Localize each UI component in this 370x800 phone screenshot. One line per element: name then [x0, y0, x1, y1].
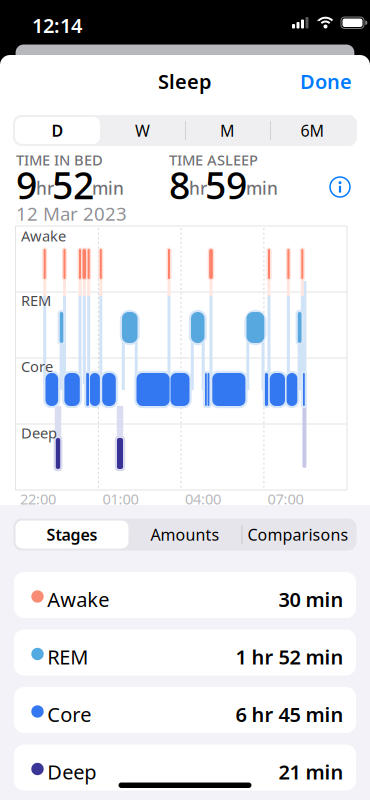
- button[interactable]: Amounts: [128, 520, 241, 548]
- staticText: hr: [36, 176, 54, 199]
- button[interactable]: REM: [14, 629, 356, 675]
- staticText: 04:00: [185, 489, 221, 508]
- staticText: W: [135, 120, 150, 141]
- staticText: REM: [21, 290, 51, 310]
- staticText: 22:00: [20, 489, 56, 508]
- staticText: 21 min: [278, 758, 343, 785]
- staticText: min: [246, 176, 278, 199]
- staticText: Core: [21, 356, 53, 376]
- button[interactable]: Done: [282, 68, 352, 95]
- staticText: Core: [47, 701, 91, 728]
- staticText: 12:14: [32, 12, 82, 39]
- staticText: 6M: [300, 120, 324, 141]
- staticText: D: [51, 120, 63, 141]
- staticText: M: [220, 120, 235, 141]
- staticText: Done: [300, 68, 352, 95]
- button[interactable]: M: [185, 117, 270, 144]
- staticText: 52: [52, 160, 94, 210]
- staticText: 01:00: [102, 489, 138, 508]
- staticText: Deep: [47, 758, 96, 785]
- button[interactable]: Awake: [14, 572, 356, 618]
- staticText: 1 hr 52 min: [235, 643, 343, 670]
- staticText: TIME IN BED: [16, 150, 103, 169]
- staticText: 30 min: [278, 586, 343, 613]
- staticText: REM: [47, 643, 88, 670]
- button[interactable]: Core: [14, 687, 356, 733]
- button[interactable]: D: [15, 117, 100, 144]
- button[interactable]: W: [100, 117, 185, 144]
- button[interactable]: Deep: [14, 744, 356, 790]
- staticText: Awake: [47, 586, 109, 613]
- button[interactable]: More info: [329, 176, 351, 198]
- staticText: Comparisons: [247, 524, 348, 545]
- staticText: 07:00: [267, 489, 303, 508]
- staticText: 59: [205, 160, 247, 210]
- staticText: min: [92, 176, 124, 199]
- staticText: 9: [16, 160, 37, 210]
- button[interactable]: Stages: [15, 520, 128, 548]
- staticText: 12 Mar 2023: [16, 201, 127, 226]
- staticText: Amounts: [150, 524, 219, 545]
- staticText: TIME ASLEEP: [169, 150, 258, 169]
- staticText: hr: [189, 176, 207, 199]
- button[interactable]: Comparisons: [241, 520, 354, 548]
- staticText: Sleep: [158, 68, 212, 95]
- button[interactable]: 6M: [270, 117, 355, 144]
- staticText: Deep: [21, 423, 57, 442]
- staticText: Awake: [21, 226, 66, 245]
- staticText: 6 hr 45 min: [235, 701, 343, 728]
- staticText: 8: [169, 160, 190, 210]
- staticText: Stages: [46, 524, 97, 545]
